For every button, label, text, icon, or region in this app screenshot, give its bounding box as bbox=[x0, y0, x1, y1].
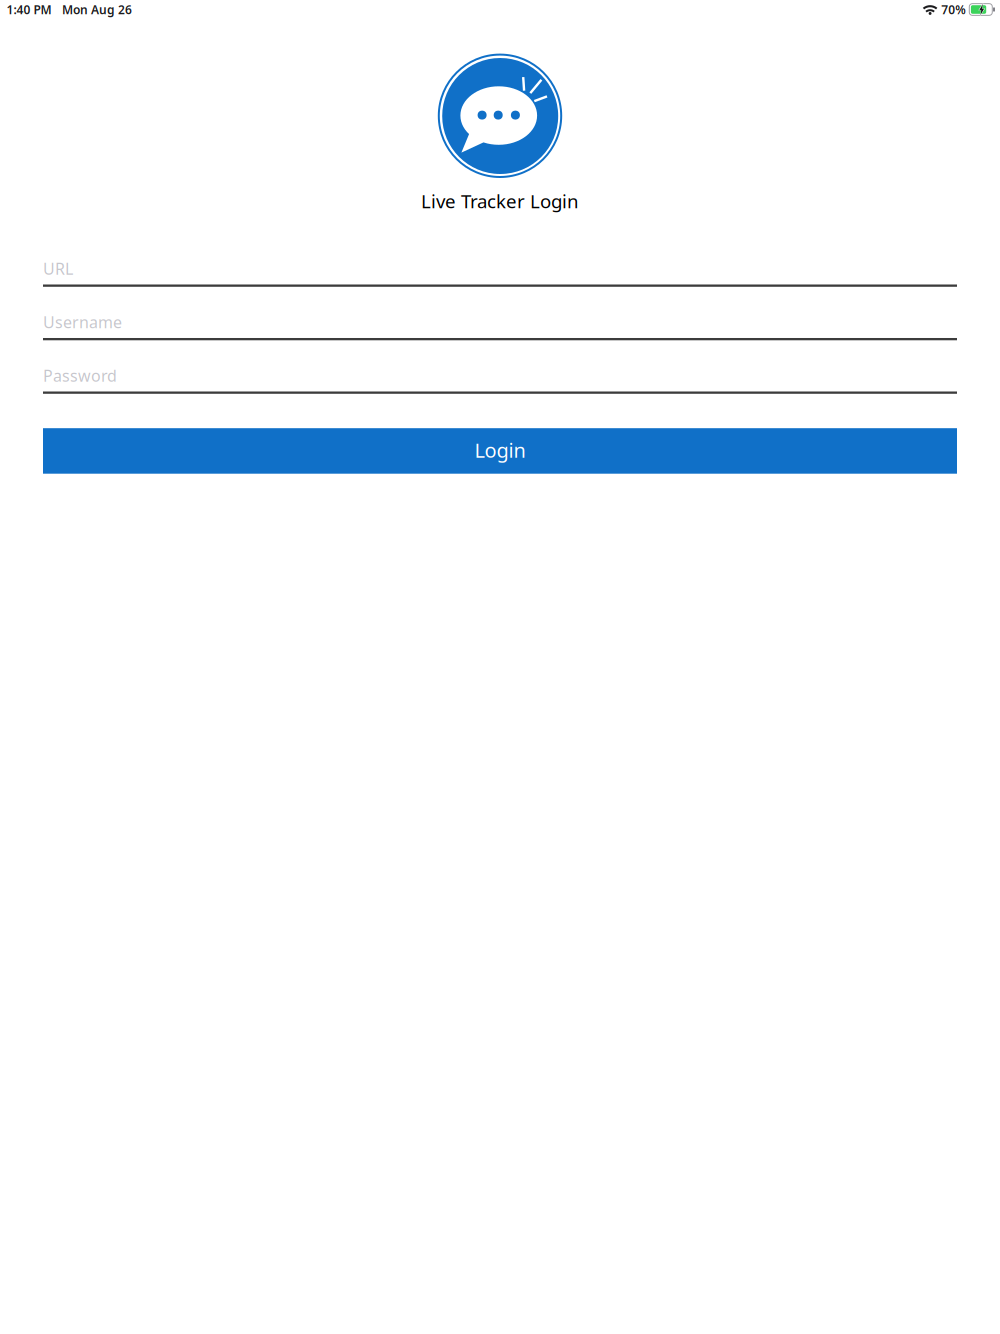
staticText: Live Tracker Login bbox=[421, 188, 579, 213]
button[interactable]: Password bbox=[43, 368, 957, 394]
button[interactable]: Username bbox=[43, 315, 957, 340]
staticText: Username bbox=[43, 311, 122, 333]
staticText: Login bbox=[474, 437, 525, 463]
button[interactable]: Login bbox=[43, 428, 957, 474]
button[interactable]: URL bbox=[43, 261, 957, 287]
staticText: Mon Aug 26 bbox=[62, 1, 132, 17]
staticText: 1:40 PM bbox=[6, 1, 51, 17]
staticText: 70% bbox=[941, 1, 966, 17]
staticText: Password bbox=[43, 365, 117, 386]
staticText: URL bbox=[43, 258, 73, 279]
